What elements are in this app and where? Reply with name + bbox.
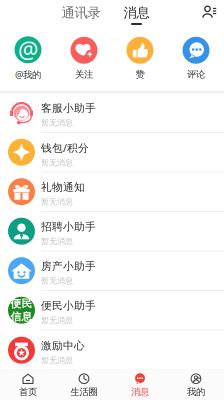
button[interactable]: 首页 xyxy=(0,370,56,400)
staticText: 客服小助手 xyxy=(41,102,96,115)
staticText: 暂无消息 xyxy=(41,118,73,128)
staticText: 我的 xyxy=(187,386,205,398)
staticText: 招聘小助手 xyxy=(41,220,96,233)
staticText: 评论 xyxy=(187,69,205,80)
staticText: 消息 xyxy=(131,386,149,398)
staticText: 礼物通知 xyxy=(41,181,85,194)
staticText: 消息 xyxy=(123,5,149,21)
button[interactable]: 钱包/积分 xyxy=(0,133,224,172)
staticText: 赞 xyxy=(135,69,144,80)
button[interactable]: 我的 xyxy=(168,370,224,400)
staticText: 暂无消息 xyxy=(41,158,73,168)
staticText: 暂无消息 xyxy=(41,355,73,365)
button[interactable]: @ xyxy=(0,36,56,81)
staticText: 暂无消息 xyxy=(41,236,73,246)
staticText: 信息 xyxy=(10,310,32,323)
staticText: 钱包/积分 xyxy=(41,141,89,155)
button[interactable]: 评论 xyxy=(168,37,224,80)
staticText: 通讯录 xyxy=(61,5,100,21)
staticText: @ xyxy=(18,35,38,65)
staticText: 生活圈 xyxy=(70,386,97,398)
button[interactable]: 联系人 xyxy=(197,1,221,23)
button[interactable]: 赞 xyxy=(112,37,168,80)
button[interactable]: 消息 xyxy=(112,370,168,400)
staticText: @我的 xyxy=(15,68,41,81)
button[interactable]: 通讯录 xyxy=(61,5,100,25)
button[interactable]: 消息 xyxy=(123,5,149,25)
button[interactable]: 激励中心 xyxy=(0,330,224,370)
staticText: 便民小助手 xyxy=(41,299,96,312)
staticText: 暂无消息 xyxy=(41,276,73,286)
staticText: 关注 xyxy=(75,69,93,80)
button[interactable]: 生活圈 xyxy=(56,370,112,400)
button[interactable]: 房产小助手 xyxy=(0,251,224,291)
staticText: 暂无消息 xyxy=(41,197,73,207)
staticText: 房产小助手 xyxy=(41,260,96,273)
button[interactable]: 招聘小助手 xyxy=(0,212,224,251)
staticText: 便民 xyxy=(10,297,32,310)
staticText: 暂无消息 xyxy=(41,315,73,325)
button[interactable]: 礼物通知 xyxy=(0,172,224,212)
button[interactable]: 客服小助手 xyxy=(0,93,224,133)
button[interactable]: 便民 xyxy=(0,291,224,330)
staticText: 激励中心 xyxy=(41,339,85,352)
button[interactable]: 关注 xyxy=(56,37,112,80)
staticText: 首页 xyxy=(19,386,37,398)
